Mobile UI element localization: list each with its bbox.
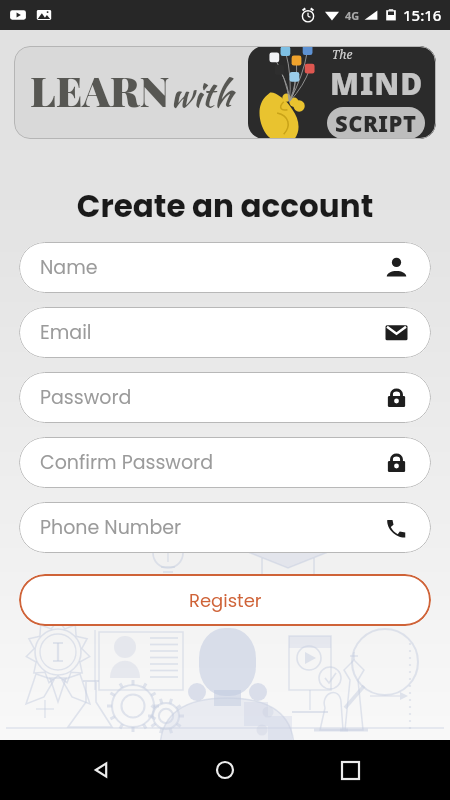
staticText: with — [170, 68, 233, 120]
staticText: Email — [40, 319, 92, 346]
button[interactable]: Password — [19, 372, 431, 423]
button[interactable]: Name — [19, 242, 431, 293]
staticText: 4G — [345, 8, 360, 23]
button[interactable]: Home — [201, 746, 249, 794]
staticText: 15:16 — [403, 5, 442, 25]
staticText: Create an account — [0, 184, 450, 227]
button[interactable]: Register — [19, 574, 431, 626]
staticText: Phone Number — [40, 514, 182, 541]
button[interactable]: Phone Number — [19, 502, 431, 553]
staticText: The — [332, 46, 353, 62]
button[interactable]: Email — [19, 307, 431, 358]
staticText: Password — [40, 384, 132, 411]
button[interactable]: Back — [77, 746, 125, 794]
staticText: Register — [189, 588, 262, 613]
staticText: Confirm Password — [40, 449, 213, 476]
button[interactable]: Confirm Password — [19, 437, 431, 488]
staticText: MIND — [330, 63, 424, 104]
staticText: SCRIPT — [335, 108, 417, 138]
staticText: LEARN — [30, 63, 170, 118]
staticText: Name — [40, 254, 98, 281]
button[interactable]: Recents — [326, 746, 374, 794]
